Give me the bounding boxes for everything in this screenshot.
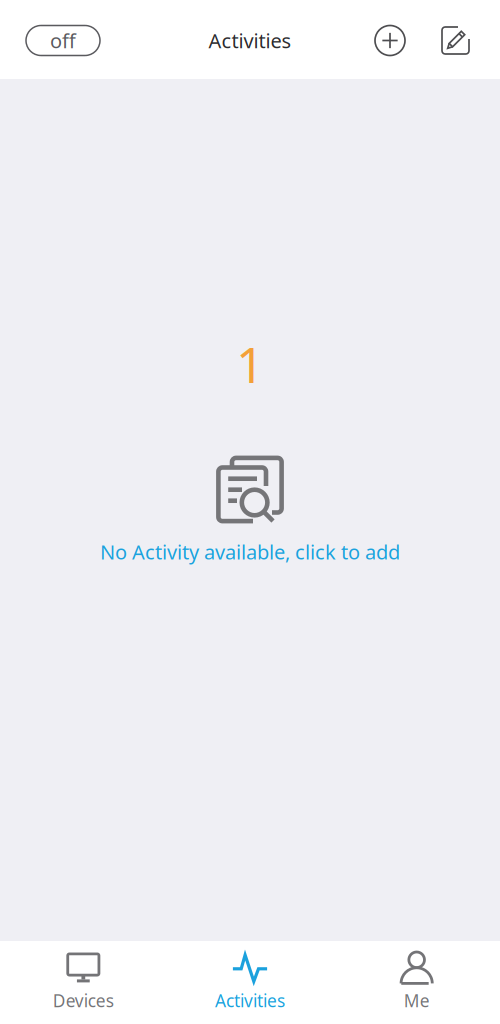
staticText: Activities: [215, 989, 285, 1012]
button[interactable]: Add: [375, 25, 405, 55]
staticText: off: [50, 27, 76, 54]
button[interactable]: Compose: [441, 26, 470, 55]
button[interactable]: Activities: [167, 941, 333, 1024]
button[interactable]: Devices: [0, 941, 167, 1024]
button[interactable]: off: [26, 25, 100, 55]
button[interactable]: Me: [333, 941, 500, 1024]
button[interactable]: No Activity available, click to add: [0, 455, 500, 565]
staticText: Devices: [53, 989, 114, 1012]
staticText: 1: [236, 331, 264, 396]
staticText: No Activity available, click to add: [100, 538, 400, 565]
staticText: Me: [404, 989, 430, 1012]
staticText: Activities: [208, 27, 291, 54]
